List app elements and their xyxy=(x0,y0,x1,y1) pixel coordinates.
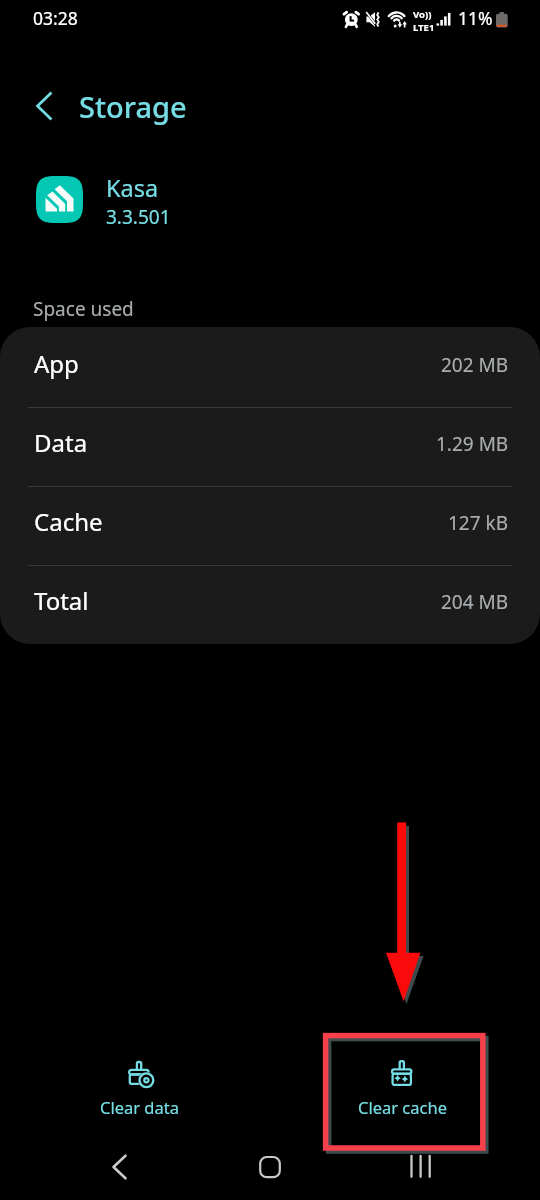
staticText: Data xyxy=(34,426,88,459)
staticText: 3.3.501 xyxy=(106,204,171,230)
staticText: Vo)) xyxy=(413,8,432,21)
button[interactable]: Clear cache xyxy=(298,1046,506,1126)
staticText: Clear data xyxy=(100,1096,179,1118)
staticText: 204 MB xyxy=(441,589,509,615)
staticText: App xyxy=(34,347,79,380)
button[interactable]: App xyxy=(0,327,540,406)
staticText: Storage xyxy=(79,87,187,126)
staticText: 127 kB xyxy=(448,510,509,536)
button[interactable]: Data xyxy=(0,406,540,485)
staticText: 1.29 MB xyxy=(436,431,509,457)
staticText: 202 MB xyxy=(441,352,509,378)
staticText: Kasa xyxy=(106,172,159,204)
button[interactable]: Navigate up xyxy=(22,84,66,128)
button[interactable]: Total xyxy=(0,564,540,643)
staticText: Total xyxy=(34,584,89,617)
staticText: 11% xyxy=(458,6,493,30)
staticText: Clear cache xyxy=(358,1096,447,1118)
button[interactable]: Clear data xyxy=(35,1046,243,1126)
staticText: LTE1 xyxy=(413,21,435,34)
button[interactable]: Back xyxy=(96,1143,144,1191)
button[interactable]: Recent apps xyxy=(398,1143,446,1191)
button[interactable]: Home xyxy=(246,1143,294,1191)
staticText: 03:28 xyxy=(33,6,78,30)
staticText: Space used xyxy=(33,296,134,322)
button[interactable]: Cache xyxy=(0,485,540,564)
staticText: Cache xyxy=(34,505,103,538)
